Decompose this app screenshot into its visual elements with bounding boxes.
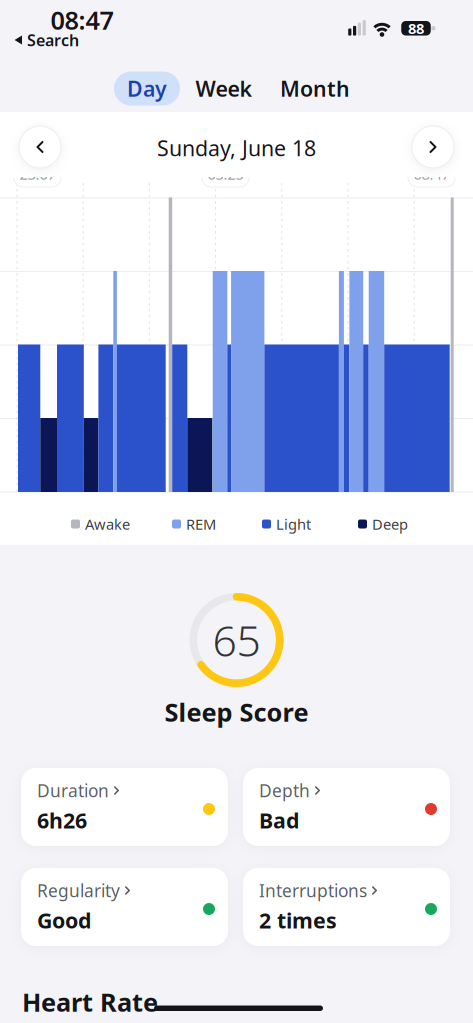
button[interactable]: Month	[270, 71, 360, 105]
staticText: 2 times	[259, 906, 337, 934]
button[interactable]: Week	[194, 71, 254, 105]
staticText: 6h26	[37, 806, 87, 834]
staticText: Regularity	[37, 879, 120, 902]
staticText: 08:47	[413, 164, 449, 184]
button[interactable]: Depth	[243, 768, 450, 846]
staticText: Interruptions	[259, 879, 367, 902]
staticText: Duration	[37, 779, 109, 802]
staticText: 88	[408, 18, 424, 38]
staticText: Sleep Score	[164, 695, 308, 729]
staticText: Deep	[372, 514, 408, 534]
staticText: 65	[212, 612, 260, 668]
staticText: Day	[127, 74, 167, 103]
staticText: Search	[27, 29, 79, 51]
staticText: Awake	[85, 514, 130, 534]
staticText: Heart Rate	[22, 985, 158, 1019]
staticText: Light	[276, 514, 311, 534]
staticText: REM	[186, 514, 216, 534]
staticText: Month	[280, 74, 350, 103]
button[interactable]: Previous day	[19, 126, 61, 168]
staticText: 08:47	[50, 3, 113, 37]
button[interactable]: Duration	[21, 768, 228, 846]
staticText: 03:25	[207, 164, 243, 184]
staticText: Bad	[259, 806, 299, 834]
button[interactable]: Back to Search	[14, 33, 79, 47]
button[interactable]: Regularity	[21, 868, 228, 946]
staticText: Good	[37, 906, 91, 934]
staticText: 23:07	[19, 164, 55, 184]
button[interactable]: Day	[114, 71, 180, 105]
button[interactable]: Interruptions	[243, 868, 450, 946]
staticText: Sunday, June 18	[157, 134, 316, 162]
staticText: Week	[195, 74, 252, 103]
button[interactable]: Next day	[412, 126, 454, 168]
staticText: Depth	[259, 779, 310, 802]
